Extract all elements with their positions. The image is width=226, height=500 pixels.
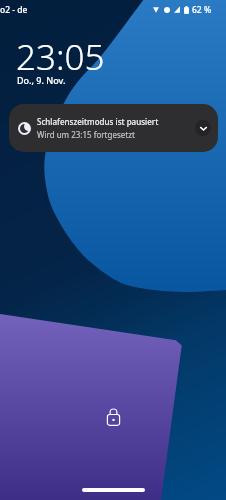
staticText: Wird um 23:15 fortgesetzt	[37, 129, 135, 140]
staticText: Do., 9. Nov.	[17, 74, 66, 86]
staticText: o2 - de	[0, 4, 28, 16]
button[interactable]: Expand notification	[195, 120, 211, 136]
staticText: 23:05	[16, 33, 105, 81]
button[interactable]: Schlafenszeitmodus ist pausiert	[9, 104, 218, 152]
staticText: 62 %	[192, 4, 212, 16]
button[interactable]: Locked	[103, 406, 124, 427]
staticText: Schlafenszeitmodus ist pausiert	[37, 116, 159, 127]
